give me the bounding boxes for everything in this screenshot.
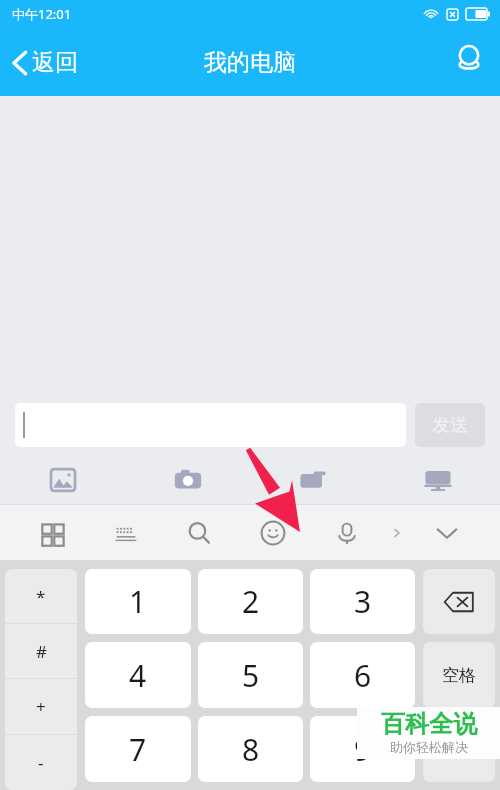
staticText: 6 [354, 655, 372, 696]
button[interactable]: 8 [198, 716, 303, 782]
button[interactable]: # [5, 624, 77, 678]
staticText: 9 [354, 729, 372, 770]
staticText: 7 [129, 729, 147, 770]
button[interactable]: 3 [310, 569, 415, 634]
staticText: 3 [354, 581, 372, 622]
button[interactable]: - [5, 735, 77, 790]
button[interactable]: Voice [310, 505, 384, 560]
button[interactable]: 返回 [0, 40, 92, 85]
staticText: * [36, 585, 46, 608]
button[interactable]: Emoji [236, 505, 310, 560]
button[interactable]: 6 [310, 642, 415, 708]
button[interactable]: 7 [85, 716, 191, 782]
button[interactable]: Profile [452, 42, 500, 82]
staticText: 4 [129, 655, 147, 696]
staticText: 中午12:01 [12, 5, 72, 23]
button[interactable]: 空格 [423, 642, 495, 708]
staticText: - [38, 751, 44, 774]
staticText: 发送 [432, 414, 468, 437]
staticText: 百科全说 [381, 709, 477, 739]
button[interactable]: 9 [310, 716, 415, 782]
button[interactable]: + [5, 679, 77, 734]
staticText: + [36, 695, 46, 718]
button[interactable]: Computer [410, 458, 466, 502]
staticText: 空格 [442, 665, 476, 686]
staticText: 8 [242, 729, 260, 770]
button[interactable]: 2 [198, 569, 303, 634]
staticText: 1 [129, 581, 147, 622]
button[interactable]: Camera [160, 458, 216, 502]
staticText: 换行 [442, 739, 476, 760]
staticText: 我的电脑 [204, 48, 296, 77]
button[interactable]: More [384, 505, 410, 560]
button[interactable]: * [5, 569, 77, 623]
button[interactable]: Backspace [423, 569, 495, 634]
button[interactable]: 5 [198, 642, 303, 708]
button[interactable]: Search [162, 505, 236, 560]
staticText: 2 [242, 581, 260, 622]
staticText: # [36, 640, 47, 663]
button[interactable]: Hide keyboard [410, 505, 484, 560]
staticText: 5 [242, 655, 260, 696]
button[interactable]: Apps [16, 505, 89, 560]
button[interactable]: 换行 [423, 716, 495, 782]
button[interactable] [15, 403, 406, 447]
button[interactable]: 发送 [415, 403, 485, 447]
button[interactable]: 4 [85, 642, 191, 708]
button[interactable]: 1 [85, 569, 191, 634]
button[interactable]: Gallery [35, 458, 91, 502]
staticText: 返回 [32, 48, 78, 77]
button[interactable]: Keyboard [89, 505, 162, 560]
staticText: 助你轻松解决 [390, 739, 468, 755]
button[interactable]: Files [285, 458, 341, 502]
